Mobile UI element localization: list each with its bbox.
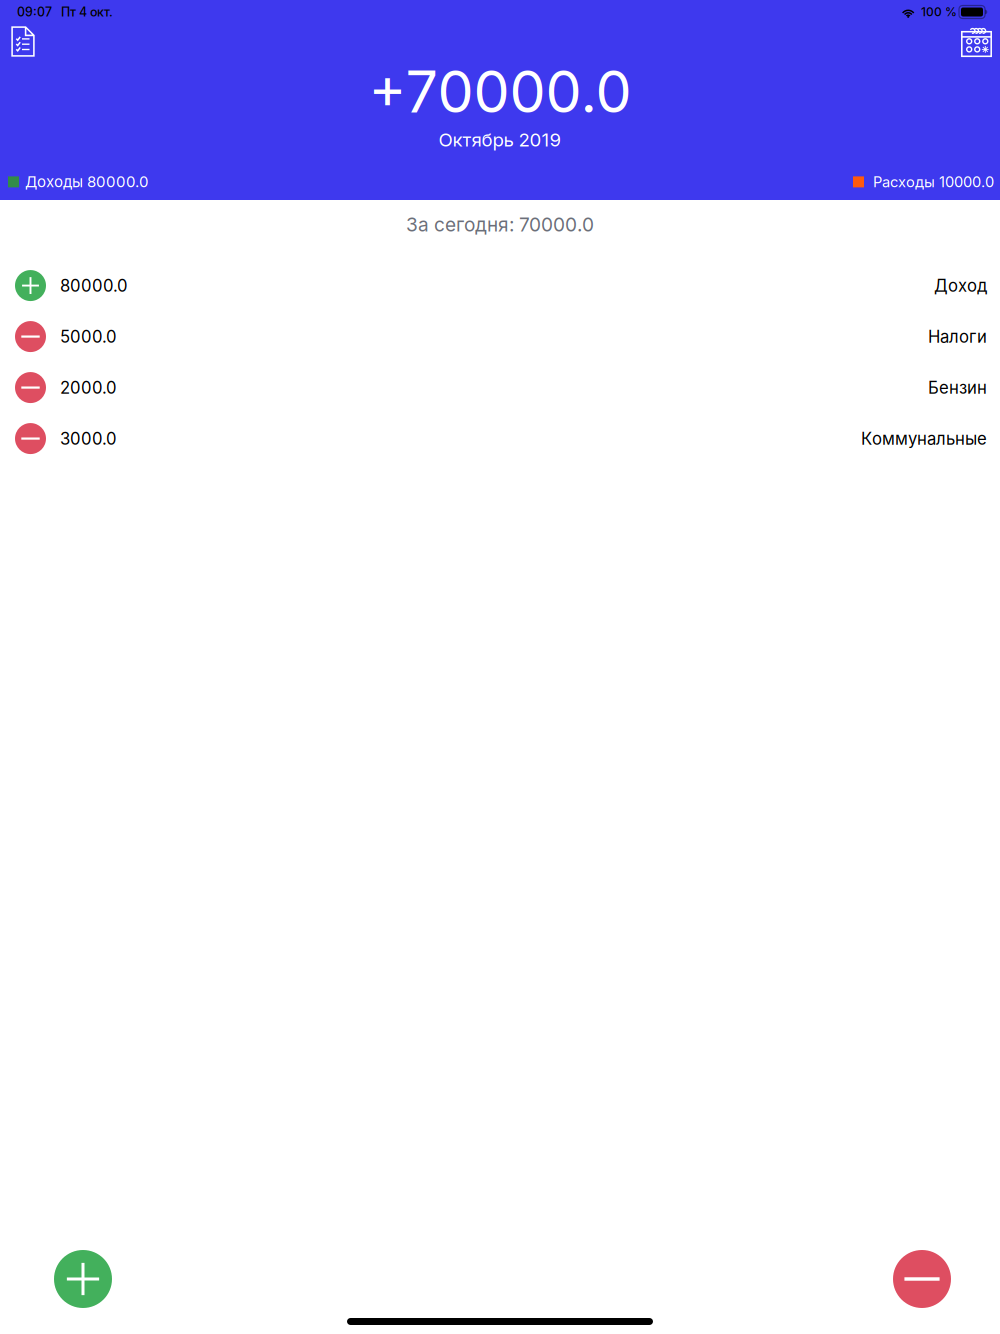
staticText: Доход — [934, 275, 987, 296]
staticText: 2000.0 — [60, 377, 117, 398]
staticText: Налоги — [928, 326, 987, 347]
staticText: Пт 4 окт. — [61, 4, 113, 19]
button[interactable]: 5000.0 — [0, 311, 1000, 362]
staticText: Доходы 80000.0 — [25, 173, 149, 191]
staticText: 100 % — [921, 5, 957, 19]
staticText: За сегодня: 70000.0 — [406, 213, 594, 236]
button[interactable]: 2000.0 — [0, 362, 1000, 413]
button[interactable]: Добавить расход — [893, 1250, 951, 1308]
staticText: Расходы 10000.0 — [873, 173, 994, 191]
staticText: Коммунальные — [861, 428, 987, 449]
staticText: Бензин — [928, 377, 987, 398]
button[interactable]: 3000.0 — [0, 413, 1000, 464]
staticText: 80000.0 — [60, 275, 128, 296]
button[interactable]: 80000.0 — [0, 260, 1000, 311]
button[interactable]: Календарь — [952, 24, 1000, 63]
button[interactable]: Добавить доход — [54, 1250, 112, 1308]
staticText: +70000.0 — [368, 57, 631, 126]
staticText: 09:07 — [17, 4, 52, 19]
button[interactable]: Транзакции — [0, 24, 44, 63]
staticText: Октябрь 2019 — [438, 128, 561, 151]
staticText: 3000.0 — [60, 428, 117, 449]
staticText: 5000.0 — [60, 326, 117, 347]
